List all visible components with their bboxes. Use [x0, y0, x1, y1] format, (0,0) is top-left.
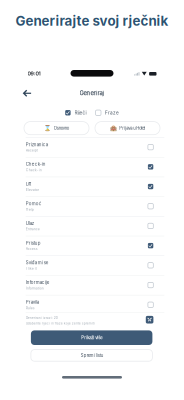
button[interactable]: Riječi	[65, 110, 86, 115]
staticText: Elevator	[26, 188, 39, 192]
staticText: Generirani izrazi: 20	[26, 316, 58, 320]
button[interactable]: Priznanica	[26, 135, 164, 155]
staticText: Sviđa mi se	[26, 260, 49, 265]
staticText: Fraze	[105, 110, 119, 115]
staticText: Priznanica	[26, 142, 48, 147]
button[interactable]: ⌛	[24, 122, 89, 135]
staticText: Receipt	[26, 148, 38, 152]
staticText: Pravila	[26, 299, 39, 305]
staticText: Informacije	[26, 280, 50, 285]
button[interactable]: Prikaži više	[31, 330, 152, 345]
button[interactable]: Fraze	[95, 110, 119, 115]
staticText: 🏨	[110, 125, 117, 131]
staticText: Riječi	[74, 110, 86, 115]
button[interactable]: Sviđa mi se	[26, 253, 164, 273]
button[interactable]: Pomoć	[26, 194, 164, 214]
button[interactable]: Pristup	[26, 233, 164, 253]
button[interactable]: Ulaz	[26, 214, 164, 233]
button[interactable]: Back	[20, 89, 33, 98]
staticText: Osnovno	[54, 126, 69, 131]
staticText: Rules	[26, 306, 35, 310]
staticText: I like it	[26, 266, 37, 271]
button[interactable]: Pravila	[26, 293, 164, 312]
button[interactable]: Lift	[26, 174, 164, 194]
button[interactable]: 🏨	[95, 122, 160, 135]
staticText: Help	[26, 207, 34, 211]
staticText: Spremi listu	[81, 353, 103, 358]
button[interactable]: Check-in	[26, 155, 164, 174]
staticText: Check-in	[26, 168, 42, 172]
staticText: Check-in	[26, 162, 46, 167]
staticText: 09:01	[27, 70, 40, 77]
staticText: Information	[26, 286, 44, 290]
staticText: Pristup	[26, 240, 41, 246]
staticText: Access	[26, 247, 38, 251]
button[interactable]: Informacije	[26, 273, 164, 293]
staticText: Odaberite riječi ili fraze koje želite s…	[26, 321, 95, 325]
staticText: Lift	[26, 181, 31, 187]
staticText: Pomoć	[26, 201, 42, 206]
staticText: Generiraj	[79, 90, 104, 97]
staticText: Prikaži više	[81, 335, 102, 340]
button[interactable]: Spremi listu	[31, 350, 152, 361]
staticText: Entrance	[26, 227, 40, 231]
staticText: Ulaz	[26, 221, 34, 226]
staticText: ⌛	[44, 125, 51, 131]
staticText: Prijava u Hotel	[119, 126, 145, 131]
staticText: Generirajte svoj rječnik	[15, 13, 168, 29]
button[interactable]: Clear selection	[146, 316, 153, 323]
